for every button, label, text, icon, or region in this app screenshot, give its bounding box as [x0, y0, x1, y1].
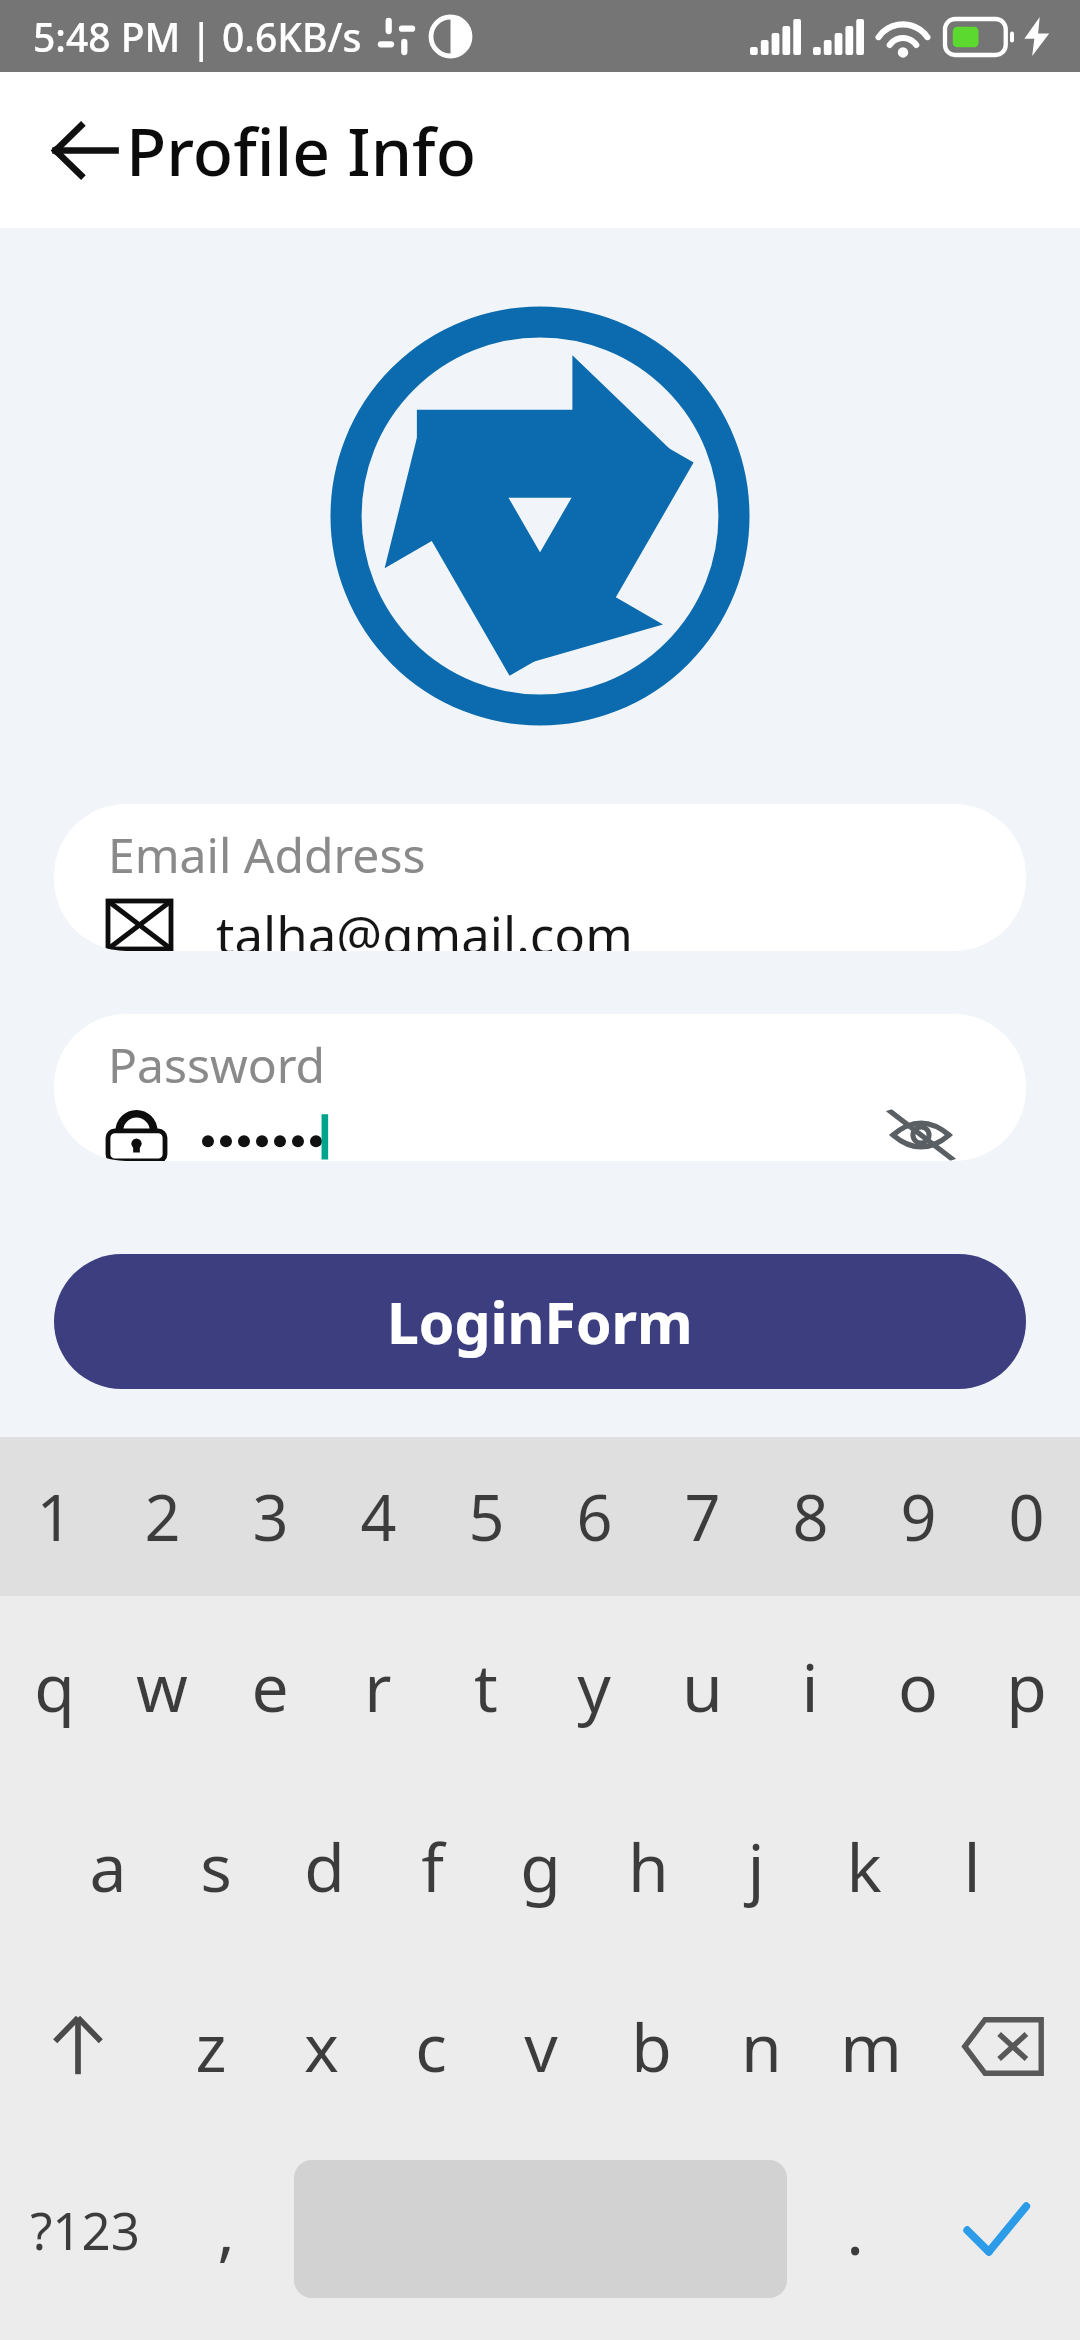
staticText: e — [251, 1641, 289, 1731]
button[interactable]: 5 — [432, 1437, 540, 1596]
button[interactable]: h — [594, 1776, 702, 1956]
button[interactable]: b — [596, 1956, 706, 2136]
button[interactable]: j — [702, 1776, 810, 1956]
button[interactable]: r — [324, 1596, 432, 1776]
staticText: LoginForm — [387, 1283, 693, 1361]
staticText: 5:48 PM | 0.6KB/s — [33, 10, 362, 63]
staticText: f — [421, 1821, 444, 1911]
staticText: Email Address — [108, 822, 426, 887]
button[interactable]: i — [756, 1596, 864, 1776]
staticText: g — [520, 1821, 561, 1911]
staticText: h — [628, 1821, 669, 1911]
button[interactable]: Enter — [911, 2136, 1080, 2322]
button[interactable]: Backspace — [926, 1956, 1080, 2136]
button[interactable]: m — [816, 1956, 926, 2136]
staticText: p — [1006, 1641, 1047, 1731]
staticText: k — [846, 1821, 882, 1911]
staticText: 6 — [576, 1474, 613, 1560]
button[interactable]: 7 — [648, 1437, 756, 1596]
button[interactable]: w — [108, 1596, 216, 1776]
staticText: v — [524, 2001, 558, 2091]
staticText: 4 — [360, 1474, 397, 1560]
staticText: a — [89, 1821, 127, 1911]
button[interactable]: 3 — [216, 1437, 324, 1596]
staticText: 0 — [1008, 1474, 1045, 1560]
staticText: , — [217, 2184, 235, 2274]
button[interactable]: Password — [54, 1014, 1026, 1161]
button[interactable]: f — [378, 1776, 486, 1956]
button[interactable]: 9 — [864, 1437, 972, 1596]
staticText: Profile Info — [126, 105, 476, 195]
staticText: 7 — [684, 1474, 721, 1560]
staticText: j — [747, 1821, 765, 1911]
staticText: . — [846, 2184, 864, 2274]
staticText: 3 — [252, 1474, 289, 1560]
button[interactable]: t — [432, 1596, 540, 1776]
staticText: r — [364, 1641, 392, 1731]
button[interactable]: q — [0, 1596, 108, 1776]
staticText: c — [415, 2001, 447, 2091]
button[interactable]: Show password — [870, 1109, 972, 1161]
staticText: i — [801, 1641, 819, 1731]
staticText: b — [631, 2001, 672, 2091]
staticText: 1 — [36, 1474, 73, 1560]
button[interactable]: Back — [12, 78, 156, 222]
button[interactable]: z — [155, 1956, 266, 2136]
staticText: m — [840, 2001, 902, 2091]
button[interactable]: a — [54, 1776, 162, 1956]
staticText: t — [474, 1641, 498, 1731]
staticText: z — [195, 2001, 227, 2091]
button[interactable]: Email Address — [54, 804, 1026, 951]
button[interactable]: k — [810, 1776, 918, 1956]
button[interactable]: ?123 — [0, 2136, 170, 2322]
button[interactable]: Shift — [0, 1956, 155, 2136]
button[interactable]: 0 — [972, 1437, 1080, 1596]
button[interactable]: , — [170, 2136, 282, 2322]
staticText: w — [136, 1641, 188, 1731]
staticText: 8 — [792, 1474, 829, 1560]
staticText: o — [898, 1641, 938, 1731]
staticText: s — [200, 1821, 232, 1911]
button[interactable]: . — [799, 2136, 911, 2322]
button[interactable]: x — [266, 1956, 376, 2136]
button[interactable]: 2 — [108, 1437, 216, 1596]
button[interactable]: LoginForm — [54, 1254, 1026, 1389]
button[interactable]: e — [216, 1596, 324, 1776]
button[interactable]: o — [864, 1596, 972, 1776]
button[interactable]: g — [486, 1776, 594, 1956]
staticText: d — [304, 1821, 345, 1911]
button[interactable]: u — [648, 1596, 756, 1776]
staticText: q — [34, 1641, 75, 1731]
staticText: n — [741, 2001, 782, 2091]
staticText: Password — [108, 1032, 326, 1097]
button[interactable]: 4 — [324, 1437, 432, 1596]
button[interactable]: d — [270, 1776, 378, 1956]
staticText: 9 — [900, 1474, 937, 1560]
staticText: y — [577, 1641, 611, 1731]
staticText: x — [304, 2001, 339, 2091]
button[interactable]: s — [162, 1776, 270, 1956]
staticText: 2 — [144, 1474, 181, 1560]
staticText: ?123 — [30, 2195, 140, 2264]
button[interactable]: l — [918, 1776, 1026, 1956]
staticText: 5 — [468, 1474, 505, 1560]
button[interactable]: 1 — [0, 1437, 108, 1596]
button[interactable]: n — [706, 1956, 816, 2136]
button[interactable]: p — [972, 1596, 1080, 1776]
staticText: talha@gmail.com — [216, 899, 633, 951]
button[interactable]: c — [376, 1956, 486, 2136]
staticText: u — [682, 1641, 723, 1731]
button[interactable]: y — [540, 1596, 648, 1776]
button[interactable]: v — [486, 1956, 596, 2136]
staticText: l — [963, 1821, 981, 1911]
button[interactable]: 6 — [540, 1437, 648, 1596]
button[interactable]: 8 — [756, 1437, 864, 1596]
